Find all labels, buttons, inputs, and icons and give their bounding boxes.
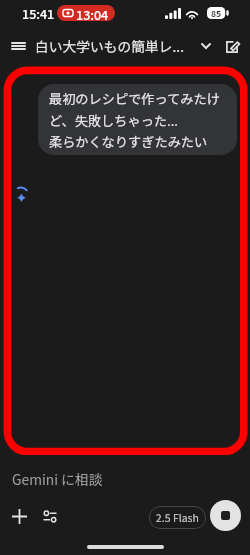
button[interactable]: 白い大学いもの簡単レ... bbox=[35, 31, 215, 61]
staticText: 白い大学いもの簡単レ... bbox=[35, 36, 184, 56]
staticText: 2.5 Flash bbox=[156, 510, 199, 525]
staticText: 85 bbox=[211, 7, 222, 19]
button[interactable]: 2.5 Flash bbox=[149, 506, 206, 529]
staticText: 最初のレシピで作ってみたけど、失敗しちゃった... 柔らかくなりすぎたみたい bbox=[49, 89, 226, 151]
button[interactable]: Tools bbox=[36, 502, 64, 530]
button[interactable]: Menu bbox=[4, 31, 33, 60]
button[interactable]: Stop bbox=[210, 500, 241, 531]
button[interactable]: Add bbox=[5, 502, 33, 530]
staticText: 13:04 bbox=[76, 5, 109, 21]
staticText: 15:41 bbox=[22, 4, 55, 22]
button[interactable]: Gemini に相談 bbox=[6, 466, 250, 492]
button[interactable]: New chat bbox=[217, 32, 246, 61]
staticText: Gemini に相談 bbox=[12, 469, 103, 489]
